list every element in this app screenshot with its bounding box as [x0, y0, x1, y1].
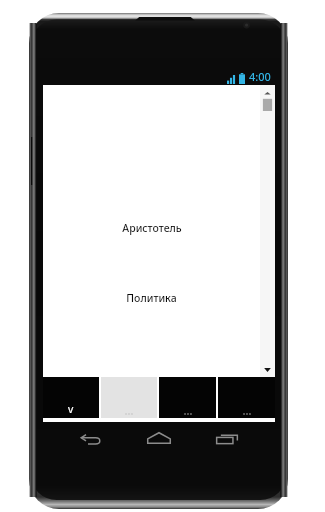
- button[interactable]: Back: [75, 426, 105, 450]
- staticText: Аристотель: [122, 221, 182, 235]
- button[interactable]: Home: [143, 426, 175, 450]
- button[interactable]: More options: [218, 377, 275, 418]
- button[interactable]: Recent apps: [212, 426, 242, 450]
- button[interactable]: Политика: [43, 286, 260, 310]
- button[interactable]: More options: [159, 377, 216, 418]
- staticText: 4:00: [249, 69, 271, 84]
- staticText: ᴠ: [68, 401, 74, 416]
- button[interactable]: Scroll: [260, 85, 275, 377]
- button[interactable]: ᴠ: [43, 377, 99, 418]
- staticText: Политика: [126, 291, 177, 305]
- button[interactable]: Аристотель: [43, 216, 260, 240]
